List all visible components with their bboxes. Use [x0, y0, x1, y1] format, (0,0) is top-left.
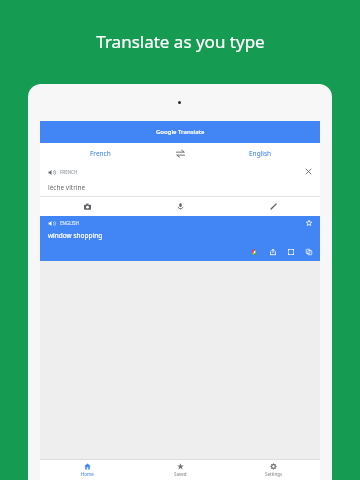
button[interactable]: Search on Google [248, 245, 261, 258]
button[interactable]: Settings [227, 460, 320, 480]
staticText: English [249, 149, 272, 158]
staticText: French [90, 149, 111, 158]
staticText: Translate as you type [96, 30, 265, 53]
button[interactable]: Fullscreen [284, 245, 297, 258]
button[interactable]: Saved [134, 460, 227, 480]
button[interactable]: Copy [302, 245, 315, 258]
button[interactable]: Listen to translation [46, 218, 56, 228]
button[interactable]: Clear [303, 166, 314, 177]
button[interactable]: Voice input [134, 197, 227, 216]
staticText: FRENCH [60, 169, 78, 175]
button[interactable]: French [40, 143, 160, 164]
button[interactable]: Share [266, 245, 279, 258]
staticText: Home [81, 471, 94, 477]
staticText: window shopping [48, 231, 103, 240]
staticText: Google Translate [156, 128, 205, 136]
button[interactable]: Save translation [303, 217, 314, 228]
button[interactable]: Listen [46, 167, 56, 177]
staticText: Settings [265, 471, 283, 477]
button[interactable]: English [200, 143, 320, 164]
button[interactable]: Home [40, 460, 134, 480]
staticText: lèche vitrine [48, 183, 86, 192]
button[interactable]: Handwriting input [227, 197, 320, 216]
button[interactable]: Swap languages [160, 143, 200, 164]
button[interactable]: Camera input [40, 197, 134, 216]
staticText: ENGLISH [60, 220, 79, 226]
staticText: Saved [174, 471, 187, 477]
